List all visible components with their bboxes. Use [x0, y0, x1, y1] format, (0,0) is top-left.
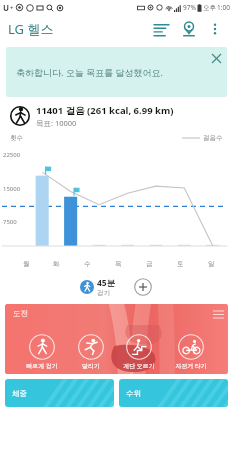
button[interactable]: 22500 — [2, 142, 227, 272]
staticText: 7500 — [3, 218, 17, 226]
staticText: 15000 — [3, 185, 21, 193]
staticText: 일 — [208, 260, 215, 268]
staticText: 1:00 — [217, 3, 230, 12]
staticText: 22500 — [3, 151, 21, 159]
button[interactable]: 더보기 — [203, 17, 227, 41]
staticText: 97% — [183, 3, 196, 12]
staticText: 걷기 — [97, 289, 110, 297]
staticText: 축하합니다. 오늘 목표를 달성했어요. — [16, 66, 163, 78]
button[interactable]: 도전 — [5, 304, 228, 374]
button[interactable]: 축하합니다. 오늘 목표를 달성했어요. — [6, 47, 227, 97]
staticText: + — [10, 4, 14, 12]
button[interactable]: 목록 — [147, 15, 175, 43]
staticText: LG 헬스 — [8, 20, 54, 38]
staticText: 걸음수 — [203, 134, 223, 142]
staticText: 목 — [115, 260, 122, 268]
staticText: 금 — [146, 260, 153, 268]
button[interactable]: 닫기 — [205, 47, 227, 69]
staticText: 토 — [177, 260, 184, 268]
button[interactable]: 계단 오르기 — [123, 334, 155, 370]
staticText: 목표: 10000 — [36, 118, 77, 128]
button[interactable]: LG 헬스 — [8, 20, 54, 38]
staticText: U — [3, 2, 10, 13]
staticText: 체중 — [12, 389, 27, 398]
staticText: 수위 — [126, 389, 141, 398]
button[interactable]: 45분 — [80, 277, 116, 297]
button[interactable]: 빠르게 걷기 — [26, 334, 58, 370]
staticText: 45분 — [97, 277, 116, 289]
button[interactable]: 체중 — [5, 379, 114, 407]
staticText: 빠르게 걷기 — [26, 362, 58, 370]
button[interactable]: 달리기 — [78, 334, 104, 370]
staticText: 11401 걸음 (261 kcal, 6.99 km) — [36, 104, 174, 117]
staticText: 달리기 — [82, 362, 100, 370]
button[interactable]: 수위 — [119, 379, 228, 407]
button[interactable]: 추가 — [132, 276, 154, 298]
staticText: 도전 — [13, 309, 28, 318]
button[interactable]: 자전거 타기 — [175, 334, 207, 370]
staticText: 계단 오르기 — [123, 362, 155, 370]
staticText: 자전거 타기 — [175, 362, 207, 370]
button[interactable]: 위치 — [175, 15, 203, 43]
staticText: 수 — [84, 260, 91, 268]
staticText: 횟수 — [10, 134, 23, 142]
button[interactable]: 메뉴 — [208, 304, 228, 324]
staticText: 월 — [23, 260, 30, 268]
button[interactable]: 11401 걸음 (261 kcal, 6.99 km) — [10, 104, 225, 128]
staticText: 화 — [53, 260, 60, 268]
staticText: 오후 — [203, 4, 216, 12]
